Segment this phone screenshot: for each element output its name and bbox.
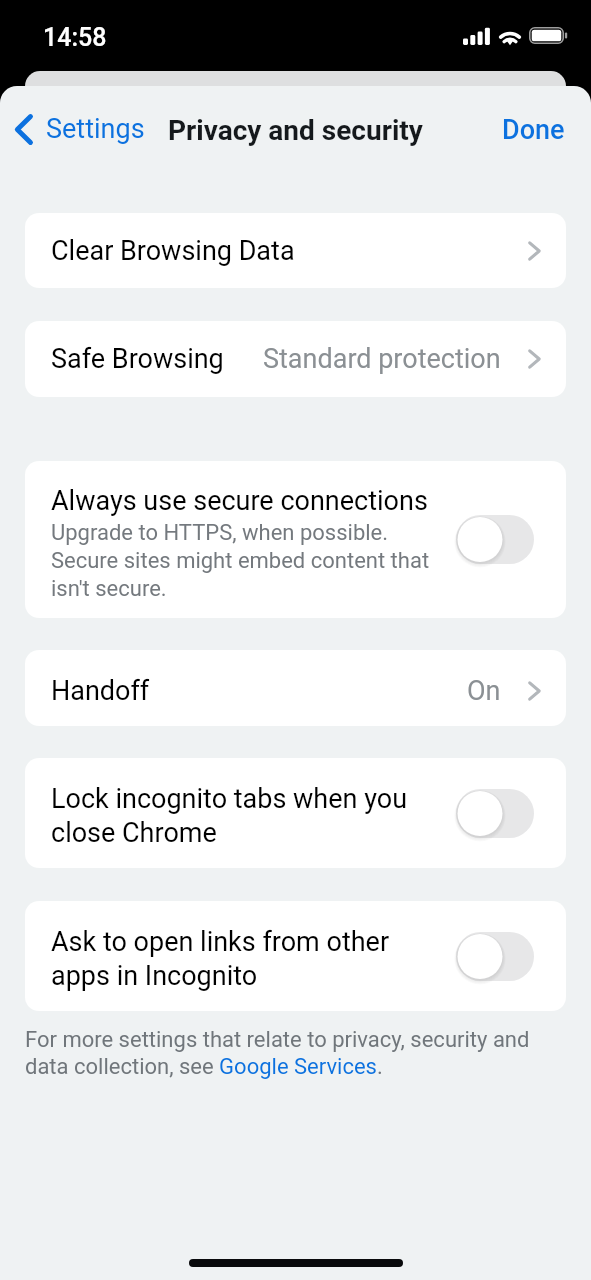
staticText: Upgrade to HTTPS, when possible. Secure …	[51, 518, 430, 602]
button[interactable]: Handoff	[25, 650, 566, 726]
button[interactable]: Lock incognito tabs when you close Chrom…	[25, 758, 566, 868]
staticText: Done	[502, 114, 565, 146]
button[interactable]: Toggle off	[453, 512, 537, 567]
staticText: Ask to open links from other apps in Inc…	[51, 924, 390, 992]
staticText: On	[467, 675, 501, 707]
staticText: Privacy and security	[168, 114, 423, 147]
button[interactable]: Settings	[6, 105, 155, 153]
staticText: Safe Browsing	[51, 343, 224, 375]
staticText: Always use secure connections	[51, 486, 428, 516]
staticText: Lock incognito tabs when you close Chrom…	[51, 781, 408, 849]
staticText: For more settings that relate to privacy…	[25, 1026, 566, 1080]
button[interactable]: Toggle off	[453, 929, 537, 984]
button[interactable]: Ask to open links from other apps in Inc…	[25, 901, 566, 1011]
staticText: Settings	[46, 113, 145, 145]
button[interactable]: Always use secure connections	[25, 461, 566, 618]
button[interactable]: Safe Browsing	[25, 321, 566, 397]
staticText: Clear Browsing Data	[51, 235, 295, 267]
button[interactable]: Toggle off	[453, 786, 537, 841]
staticText: Standard protection	[263, 343, 501, 375]
button[interactable]: Done	[476, 104, 591, 156]
staticText: 14:58	[43, 23, 107, 52]
button[interactable]: Clear Browsing Data	[25, 213, 566, 288]
staticText: Handoff	[51, 675, 150, 707]
